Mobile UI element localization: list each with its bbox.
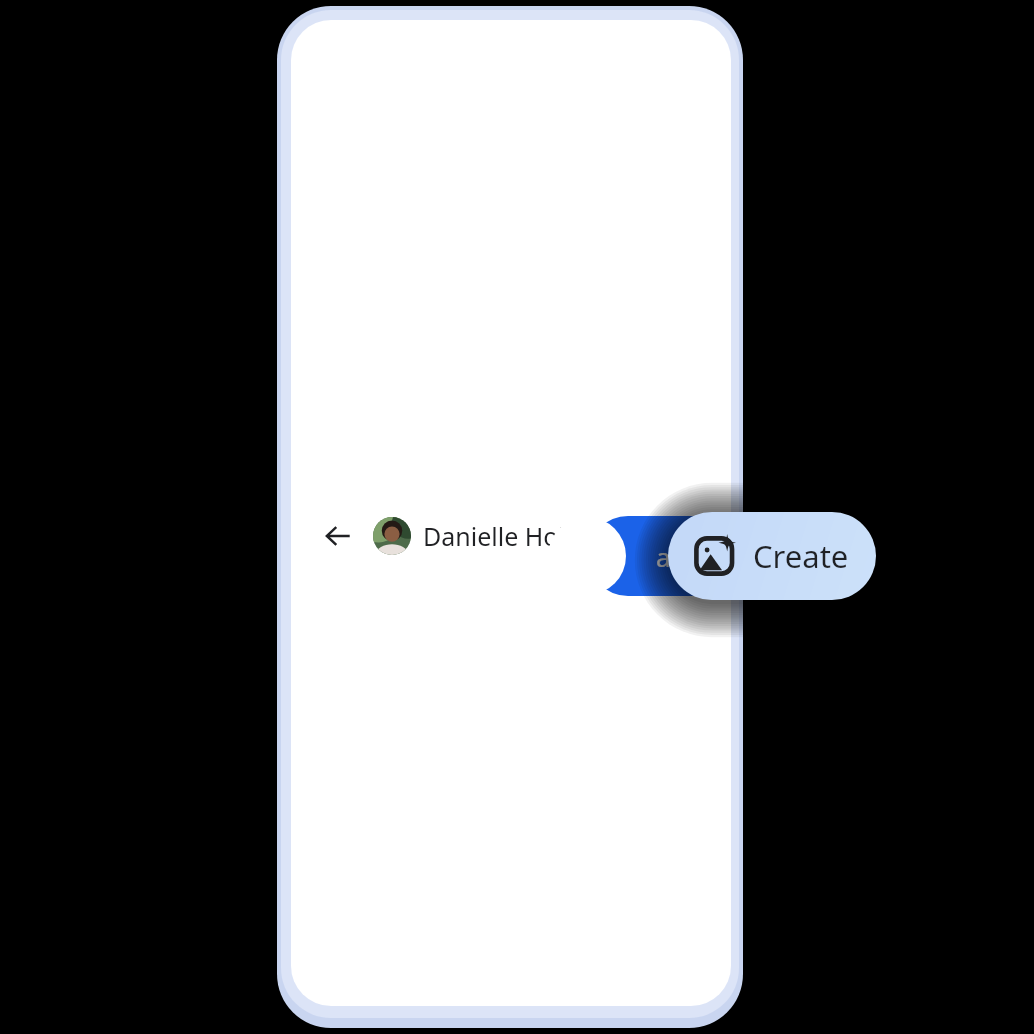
button[interactable]: Create [668,512,876,600]
button[interactable]: Call [658,515,700,557]
button[interactable]: a [588,516,738,596]
button[interactable]: Video call [615,515,657,557]
button[interactable]: Back [317,515,359,557]
staticText: Create [753,535,849,577]
button[interactable] [373,517,411,555]
staticText: a [656,539,671,574]
button[interactable]: More options [703,516,711,556]
staticText: Danielle Holmes [423,519,615,553]
